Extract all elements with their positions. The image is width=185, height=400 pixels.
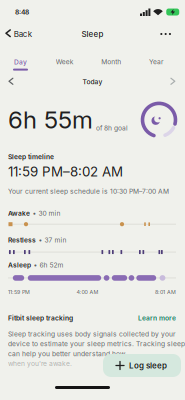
staticText: • 30 min [32, 209, 60, 217]
staticText: device to estimate your sleep metrics. T… [8, 340, 185, 348]
staticText: can help you better understand how [8, 350, 125, 358]
staticText: Restless [8, 236, 36, 244]
staticText: Log sleep [129, 361, 167, 370]
staticText: 11:59 PM [8, 289, 30, 295]
staticText: Month [101, 58, 121, 66]
staticText: 11:59 PM–8:02 AM [8, 164, 123, 179]
button[interactable]: Next day [171, 78, 185, 85]
staticText: Learn more [138, 314, 176, 322]
button[interactable]: Back [0, 29, 32, 39]
staticText: Day [14, 58, 27, 66]
staticText: Sleep tracking uses body signals collect… [8, 330, 176, 338]
staticText: when you're awake. [8, 360, 72, 368]
button[interactable]: Log sleep [103, 354, 181, 377]
button[interactable]: Day [0, 58, 28, 71]
button[interactable]: Year [149, 58, 185, 71]
staticText: • 37 min [38, 236, 66, 244]
staticText: Week [56, 58, 74, 66]
staticText: of 8h goal [96, 124, 128, 132]
staticText: Your current sleep schedule is 10:30 PM–… [8, 187, 169, 195]
button[interactable]: Week [56, 58, 74, 71]
staticText: Awake [8, 209, 30, 217]
staticText: 8:48 [15, 8, 29, 16]
staticText: Fitbit sleep tracking [8, 314, 73, 322]
button[interactable]: Previous day [0, 78, 14, 85]
staticText: Sleep timeline [8, 153, 54, 161]
button[interactable]: More [160, 33, 185, 35]
staticText: Asleep [8, 261, 31, 269]
staticText: Today [82, 78, 102, 86]
staticText: Back [14, 29, 32, 39]
button[interactable]: Learn more [138, 314, 185, 322]
staticText: Year [149, 58, 164, 66]
staticText: 4:00 AM [76, 289, 98, 295]
staticText: 6h 55m [8, 106, 93, 134]
staticText: 8:01 AM [155, 289, 176, 295]
staticText: • 6h 52m [33, 261, 63, 269]
button[interactable]: Month [101, 58, 121, 71]
staticText: Sleep [81, 29, 103, 39]
